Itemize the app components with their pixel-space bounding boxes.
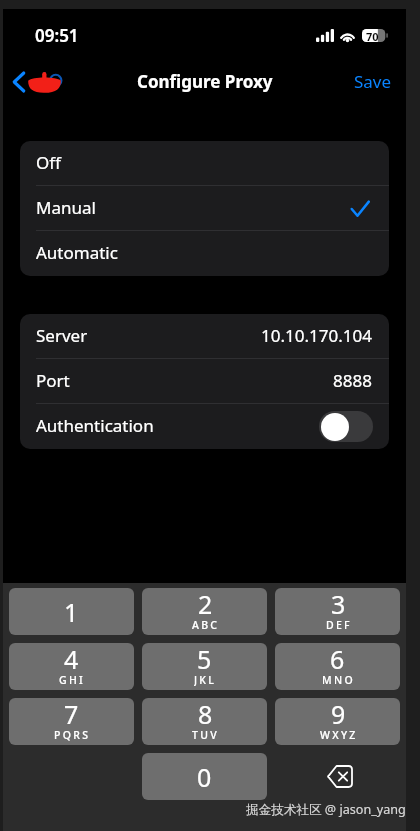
staticText: TUV <box>192 728 220 741</box>
button[interactable]: 4 <box>9 643 134 690</box>
button[interactable]: Manual <box>20 186 389 231</box>
button[interactable]: 8 <box>142 698 267 745</box>
staticText: 8888 <box>333 369 372 392</box>
staticText: PQRS <box>54 728 91 741</box>
staticText: 70 <box>366 29 379 42</box>
button[interactable]: 7 <box>9 698 134 745</box>
staticText: DEF <box>326 618 352 631</box>
button[interactable]: Off <box>20 141 389 186</box>
button[interactable]: 6 <box>275 643 400 690</box>
staticText: Port <box>36 369 70 392</box>
button[interactable]: 5 <box>142 643 267 690</box>
staticText: Manual <box>36 196 96 219</box>
staticText: Off <box>36 151 61 174</box>
button[interactable]: Delete <box>275 753 400 800</box>
button[interactable]: 1 <box>9 588 134 635</box>
staticText: Authentication <box>36 414 154 437</box>
button[interactable]: Server <box>20 314 389 359</box>
staticText: Server <box>36 324 88 347</box>
staticText: ABC <box>192 618 220 631</box>
staticText: 1 <box>64 595 79 629</box>
staticText: JKL <box>194 673 217 686</box>
staticText: 7 <box>64 698 79 731</box>
button[interactable]: 3 <box>275 588 400 635</box>
button[interactable]: Authentication toggle <box>319 411 373 442</box>
staticText: 9 <box>331 698 346 731</box>
button[interactable]: 2 <box>142 588 267 635</box>
staticText: 8 <box>198 698 213 731</box>
staticText: 5 <box>197 643 212 676</box>
staticText: Automatic <box>36 241 118 264</box>
staticText: 10.10.170.104 <box>261 324 372 347</box>
staticText: GHI <box>59 673 86 686</box>
button[interactable]: 0 <box>142 753 267 800</box>
button[interactable]: Automatic <box>20 231 389 276</box>
staticText: 0 <box>197 760 212 794</box>
staticText: 3 <box>331 588 346 621</box>
button[interactable]: Save <box>340 62 406 101</box>
button[interactable]: Back <box>3 65 71 98</box>
staticText: WXYZ <box>320 728 358 741</box>
staticText: 掘金技术社区 @ jason_yang <box>246 801 406 818</box>
staticText: 2 <box>198 588 213 621</box>
staticText: MNO <box>322 673 355 686</box>
staticText: Configure Proxy <box>137 70 273 93</box>
staticText: Save <box>354 70 392 93</box>
button[interactable]: Port <box>20 359 389 404</box>
staticText: 09:51 <box>35 24 79 47</box>
staticText: 6 <box>330 643 345 676</box>
staticText: 4 <box>64 643 79 676</box>
button[interactable]: 9 <box>275 698 400 745</box>
